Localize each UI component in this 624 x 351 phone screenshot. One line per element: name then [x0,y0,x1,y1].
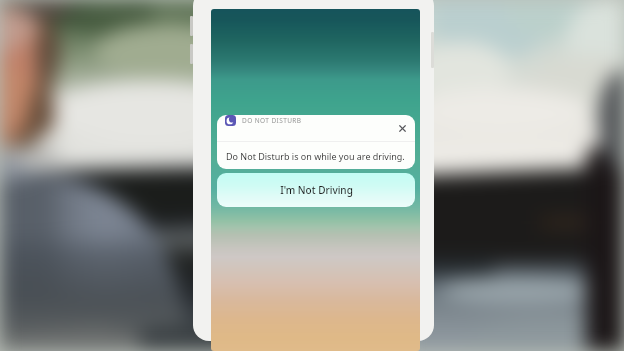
button[interactable]: I'm Not Driving [217,173,415,207]
button[interactable]: Close notification [396,122,409,135]
staticText: I'm Not Driving [280,183,353,197]
staticText: Do Not Disturb is on while you are drivi… [226,150,405,162]
button[interactable]: Do Not Disturb is on while you are drivi… [217,142,415,169]
staticText: DO NOT DISTURB [242,116,302,125]
